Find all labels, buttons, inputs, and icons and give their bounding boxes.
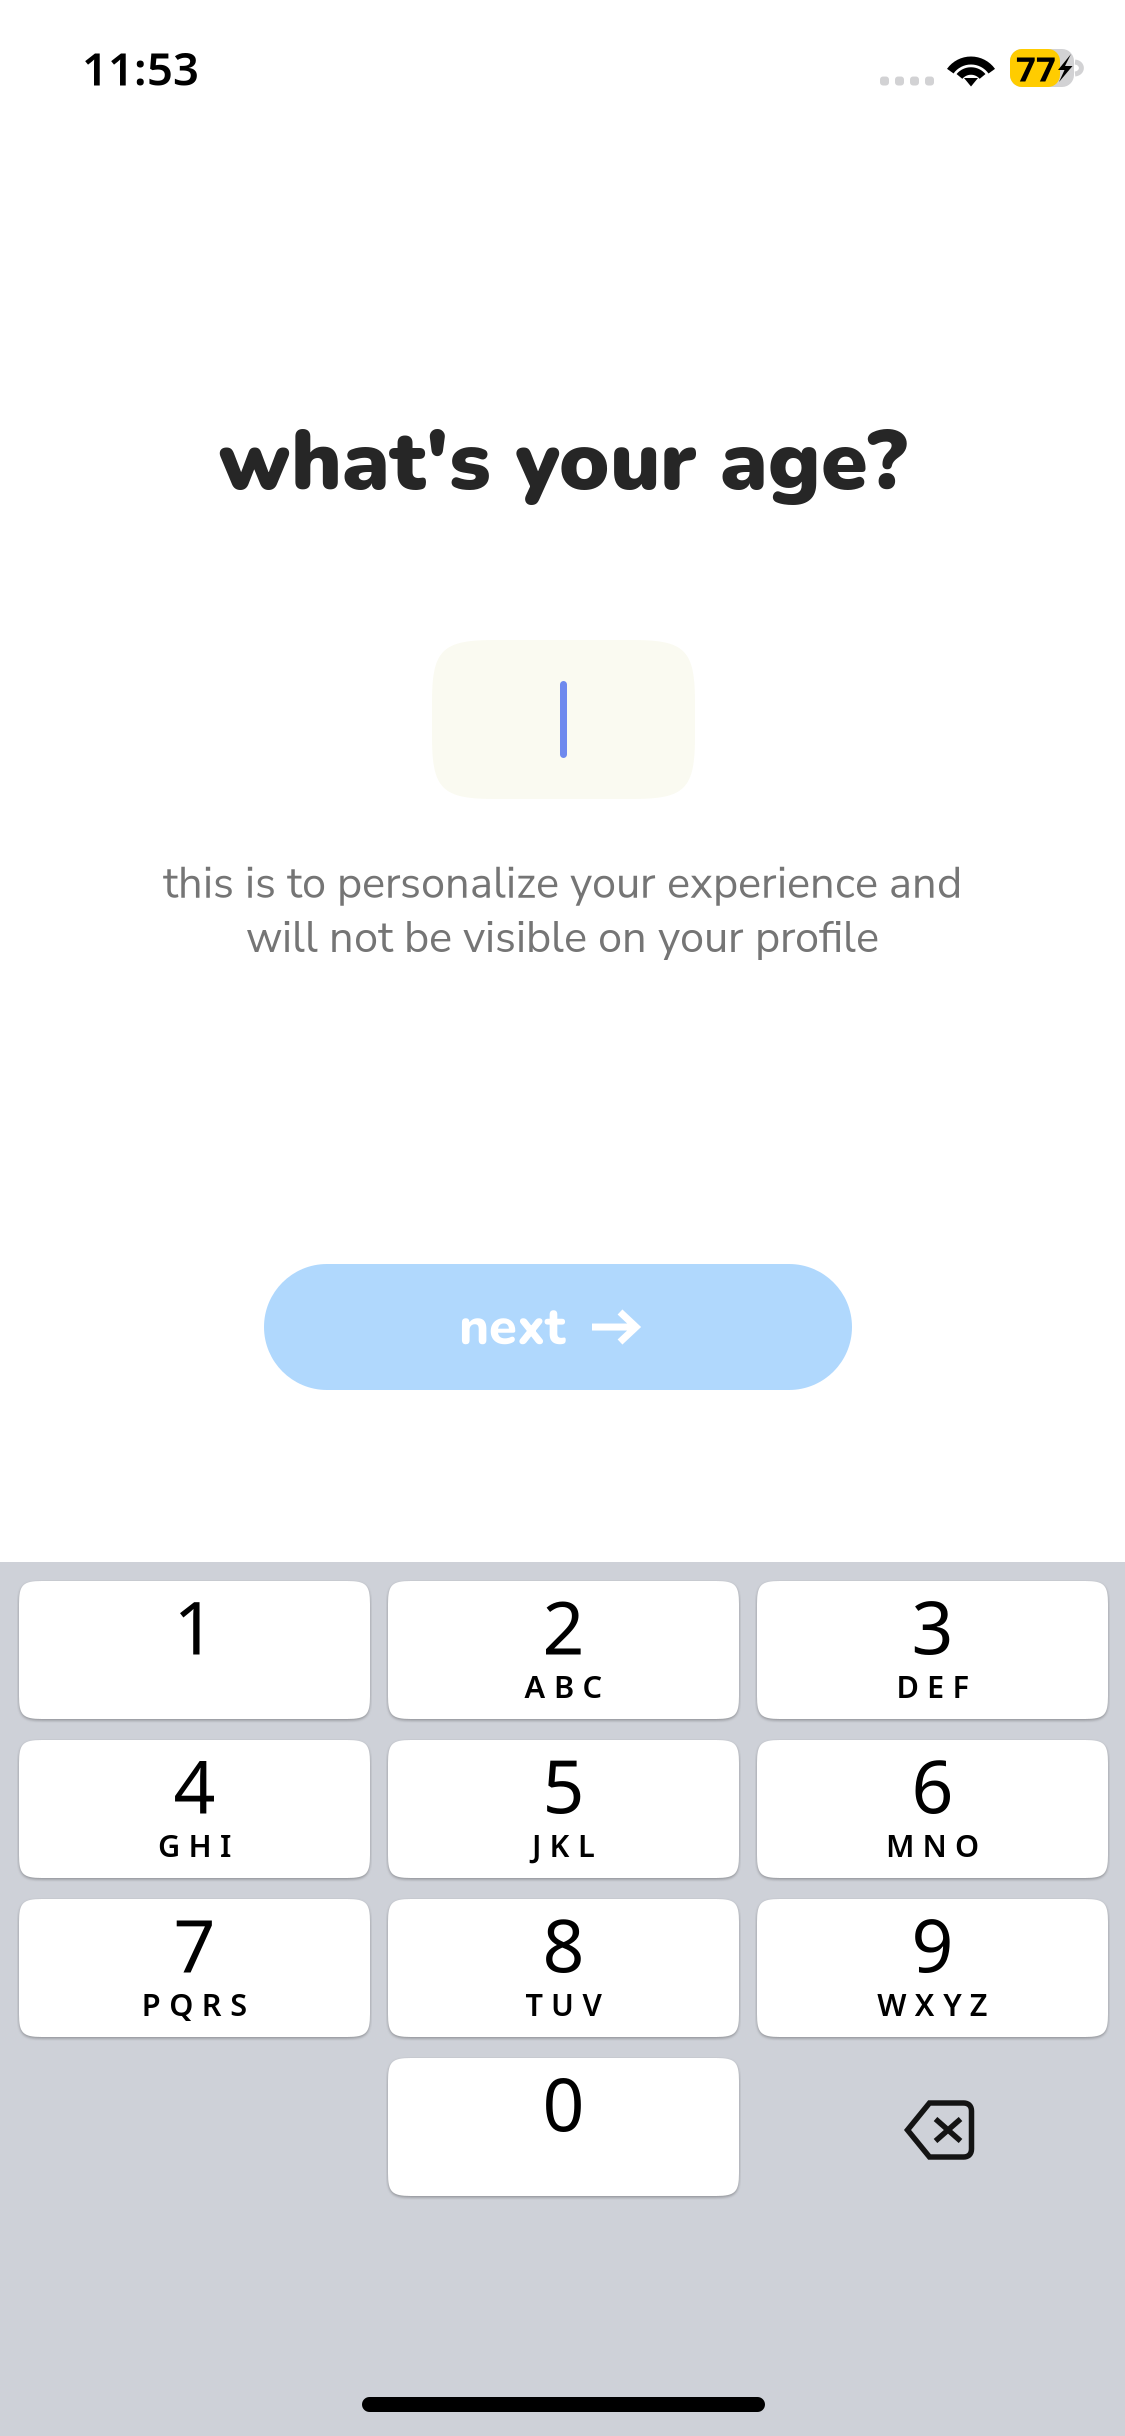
button[interactable]: next bbox=[264, 1264, 852, 1390]
staticText: 9 bbox=[911, 1895, 953, 1993]
staticText: 6 bbox=[911, 1736, 953, 1834]
button[interactable]: 8 bbox=[388, 1899, 739, 2037]
staticText: 2 bbox=[542, 1577, 584, 1675]
staticText: 11:53 bbox=[82, 38, 199, 98]
button[interactable]: 0 bbox=[388, 2058, 739, 2196]
button[interactable]: 1 bbox=[19, 1581, 370, 1719]
staticText: MNO bbox=[886, 1825, 979, 1865]
button[interactable]: 5 bbox=[388, 1740, 739, 1878]
staticText: JKL bbox=[532, 1825, 595, 1865]
staticText: 8 bbox=[542, 1895, 584, 1993]
button[interactable]: 6 bbox=[757, 1740, 1108, 1878]
staticText: what's your age? bbox=[218, 404, 907, 519]
staticText: this is to personalize your experience a… bbox=[163, 854, 962, 913]
button[interactable]: Delete bbox=[757, 2058, 1108, 2196]
staticText: 7 bbox=[173, 1895, 215, 1993]
staticText: DEF bbox=[896, 1666, 968, 1706]
staticText: 4 bbox=[173, 1736, 215, 1834]
staticText: WXYZ bbox=[877, 1984, 988, 2024]
button[interactable]: 2 bbox=[388, 1581, 739, 1719]
button[interactable]: 9 bbox=[757, 1899, 1108, 2037]
staticText: 1 bbox=[173, 1577, 215, 1675]
staticText: next bbox=[459, 1292, 565, 1361]
staticText: GHI bbox=[158, 1825, 231, 1865]
staticText: 0 bbox=[542, 2054, 584, 2152]
staticText: TUV bbox=[525, 1984, 601, 2024]
staticText: will not be visible on your profile bbox=[246, 908, 879, 967]
staticText: PQRS bbox=[142, 1984, 247, 2024]
button[interactable]: 7 bbox=[19, 1899, 370, 2037]
button[interactable]: 3 bbox=[757, 1581, 1108, 1719]
staticText: 5 bbox=[542, 1736, 584, 1834]
button[interactable]: 4 bbox=[19, 1740, 370, 1878]
staticText: ABC bbox=[524, 1666, 602, 1706]
staticText: 77 bbox=[1016, 45, 1056, 91]
staticText: 3 bbox=[911, 1577, 953, 1675]
